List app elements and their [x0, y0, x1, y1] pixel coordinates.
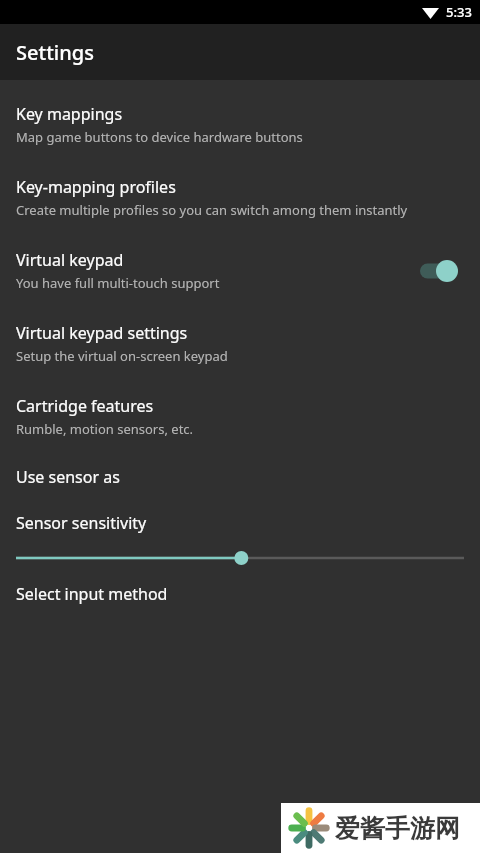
staticText: Use sensor as	[16, 466, 120, 488]
button[interactable]: Cartridge features	[0, 380, 480, 453]
staticText: Create multiple profiles so you can swit…	[16, 201, 408, 219]
staticText: Settings	[16, 39, 94, 66]
staticText: Virtual keypad settings	[16, 322, 188, 344]
button[interactable]: Virtual keypad settings	[0, 307, 480, 380]
staticText: Select input method	[16, 583, 168, 605]
button[interactable]: Key-mapping profiles	[0, 161, 480, 234]
staticText: Rumble, motion sensors, etc.	[16, 420, 194, 438]
button[interactable]: Sensor sensitivity	[0, 500, 480, 570]
staticText: Setup the virtual on-screen keypad	[16, 347, 228, 365]
staticText: Virtual keypad	[16, 249, 124, 271]
staticText: 5:33	[446, 3, 472, 21]
staticText: Key-mapping profiles	[16, 176, 176, 198]
staticText: Cartridge features	[16, 395, 154, 417]
staticText: You have full multi-touch support	[16, 274, 220, 292]
button[interactable]: Virtual keypad toggle, on	[412, 255, 464, 287]
button[interactable]: Use sensor as	[0, 453, 480, 500]
staticText: Key mappings	[16, 103, 123, 125]
button[interactable]: Virtual keypad	[0, 234, 480, 307]
staticText: 爱酱手游网	[335, 813, 460, 844]
button[interactable]: Select input method	[0, 570, 480, 617]
staticText: Sensor sensitivity	[16, 512, 147, 534]
staticText: Map game buttons to device hardware butt…	[16, 128, 303, 146]
button[interactable]: Key mappings	[0, 88, 480, 161]
other: Sensor sensitivity slider	[16, 548, 464, 568]
